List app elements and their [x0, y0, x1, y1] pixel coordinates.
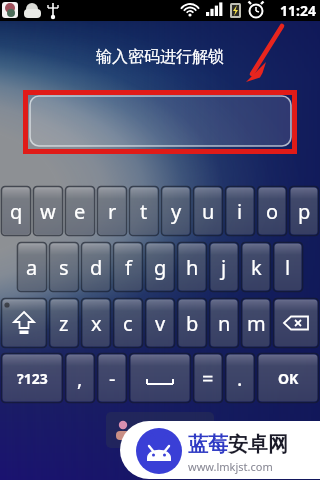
- staticText: o: [266, 198, 279, 225]
- button[interactable]: -: [97, 353, 127, 403]
- staticText: 11:24: [280, 1, 316, 20]
- staticText: h: [186, 254, 199, 281]
- button[interactable]: w: [33, 186, 63, 236]
- button[interactable]: Space: [129, 353, 191, 403]
- button[interactable]: k: [241, 242, 271, 292]
- other: Pointer arrow: [0, 0, 320, 480]
- staticText: i: [237, 198, 243, 225]
- staticText: v: [155, 310, 166, 337]
- button[interactable]: b: [177, 298, 207, 348]
- button[interactable]: Shift: [1, 298, 47, 348]
- staticText: r: [108, 198, 117, 225]
- staticText: w: [40, 198, 56, 225]
- button[interactable]: f: [113, 242, 143, 292]
- staticText: q: [10, 198, 23, 225]
- button[interactable]: l: [273, 242, 303, 292]
- staticText: e: [74, 198, 86, 225]
- button[interactable]: ,: [65, 353, 95, 403]
- staticText: l: [285, 254, 291, 281]
- button[interactable]: g: [145, 242, 175, 292]
- button[interactable]: d: [81, 242, 111, 292]
- staticText: d: [90, 254, 103, 281]
- staticText: t: [140, 198, 148, 225]
- button[interactable]: j: [209, 242, 239, 292]
- button[interactable]: v: [145, 298, 175, 348]
- button[interactable]: q: [1, 186, 31, 236]
- button[interactable]: e: [65, 186, 95, 236]
- button[interactable]: x: [81, 298, 111, 348]
- staticText: 安卓网: [228, 432, 288, 457]
- button[interactable]: r: [97, 186, 127, 236]
- staticText: u: [202, 198, 215, 225]
- staticText: 输入密码进行解锁: [96, 47, 224, 67]
- button[interactable]: s: [49, 242, 79, 292]
- staticText: www.lmkjst.com: [188, 459, 273, 474]
- staticText: y: [171, 198, 182, 225]
- button[interactable]: a: [17, 242, 47, 292]
- staticText: =: [202, 365, 214, 392]
- button[interactable]: t: [129, 186, 159, 236]
- button[interactable]: Delete: [273, 298, 319, 348]
- button[interactable]: Watermark: [120, 421, 320, 479]
- staticText: f: [125, 254, 132, 281]
- staticText: -: [109, 365, 116, 392]
- staticText: 蓝莓: [188, 432, 228, 457]
- button[interactable]: c: [113, 298, 143, 348]
- staticText: j: [221, 254, 227, 281]
- staticText: b: [186, 310, 199, 337]
- staticText: OK: [278, 369, 299, 388]
- staticText: k: [251, 254, 262, 281]
- button[interactable]: h: [177, 242, 207, 292]
- staticText: ,: [77, 365, 83, 392]
- button[interactable]: Emergency call: [106, 412, 214, 448]
- button[interactable]: n: [209, 298, 239, 348]
- staticText: .: [237, 365, 243, 392]
- button[interactable]: o: [257, 186, 287, 236]
- button[interactable]: [30, 96, 291, 146]
- button[interactable]: u: [193, 186, 223, 236]
- button[interactable]: p: [289, 186, 319, 236]
- staticText: x: [91, 310, 102, 337]
- button[interactable]: i: [225, 186, 255, 236]
- staticText: a: [26, 254, 38, 281]
- button[interactable]: =: [193, 353, 223, 403]
- button[interactable]: .: [225, 353, 255, 403]
- button[interactable]: y: [161, 186, 191, 236]
- staticText: ?123: [17, 369, 48, 388]
- staticText: c: [123, 310, 133, 337]
- staticText: g: [154, 254, 167, 281]
- staticText: s: [59, 254, 69, 281]
- button[interactable]: ?123: [1, 353, 63, 403]
- button[interactable]: OK: [257, 353, 319, 403]
- button[interactable]: z: [49, 298, 79, 348]
- staticText: p: [298, 198, 311, 225]
- staticText: z: [59, 310, 69, 337]
- staticText: n: [218, 310, 231, 337]
- button[interactable]: m: [241, 298, 271, 348]
- staticText: m: [247, 310, 266, 337]
